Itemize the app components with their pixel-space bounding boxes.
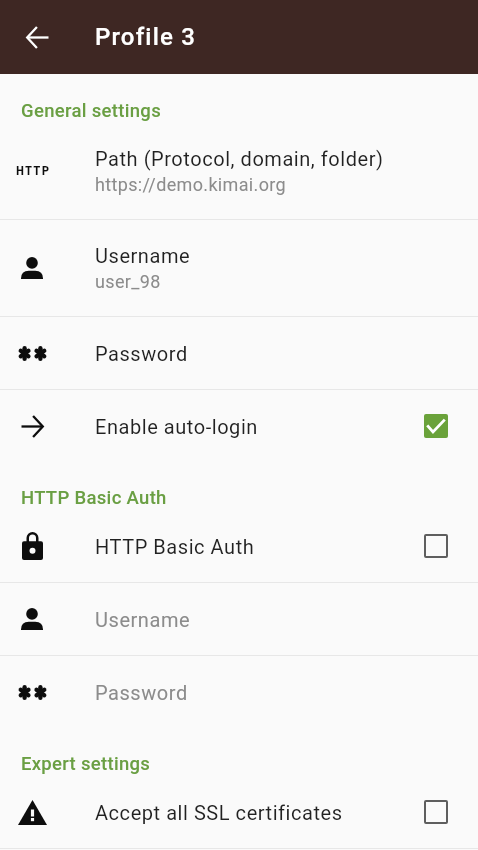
button[interactable]: Username (0, 220, 478, 316)
staticText: Password (95, 681, 188, 704)
button[interactable]: Accept all SSL certificates (0, 776, 478, 848)
staticText: Accept all SSL certificates (95, 801, 343, 824)
button[interactable]: Password (0, 656, 478, 728)
staticText: Username (95, 244, 191, 267)
staticText: Path (Protocol, domain, folder) (95, 147, 384, 170)
button[interactable]: HTTP (0, 123, 478, 219)
staticText: HTTP Basic Auth (21, 487, 167, 509)
button[interactable]: Enable auto-login (0, 390, 478, 462)
button[interactable]: Enable auto-login (412, 402, 460, 450)
staticText: HTTP (16, 163, 51, 178)
staticText: Enable auto-login (95, 415, 258, 438)
staticText: HTTP Basic Auth (95, 535, 255, 558)
button[interactable]: Accept all SSL certificates (412, 788, 460, 836)
button[interactable]: Username (0, 583, 478, 655)
staticText: user_98 (95, 271, 161, 292)
staticText: General settings (21, 100, 162, 122)
button[interactable]: Navigate up (13, 13, 61, 61)
staticText: Expert settings (21, 753, 151, 775)
button[interactable]: Password (0, 317, 478, 389)
staticText: https://demo.kimai.org (95, 174, 287, 195)
staticText: Username (95, 608, 191, 631)
button[interactable]: HTTP Basic Auth (412, 522, 460, 570)
staticText: Password (95, 342, 188, 365)
staticText: Profile 3 (95, 23, 197, 51)
button[interactable]: HTTP Basic Auth (0, 510, 478, 582)
